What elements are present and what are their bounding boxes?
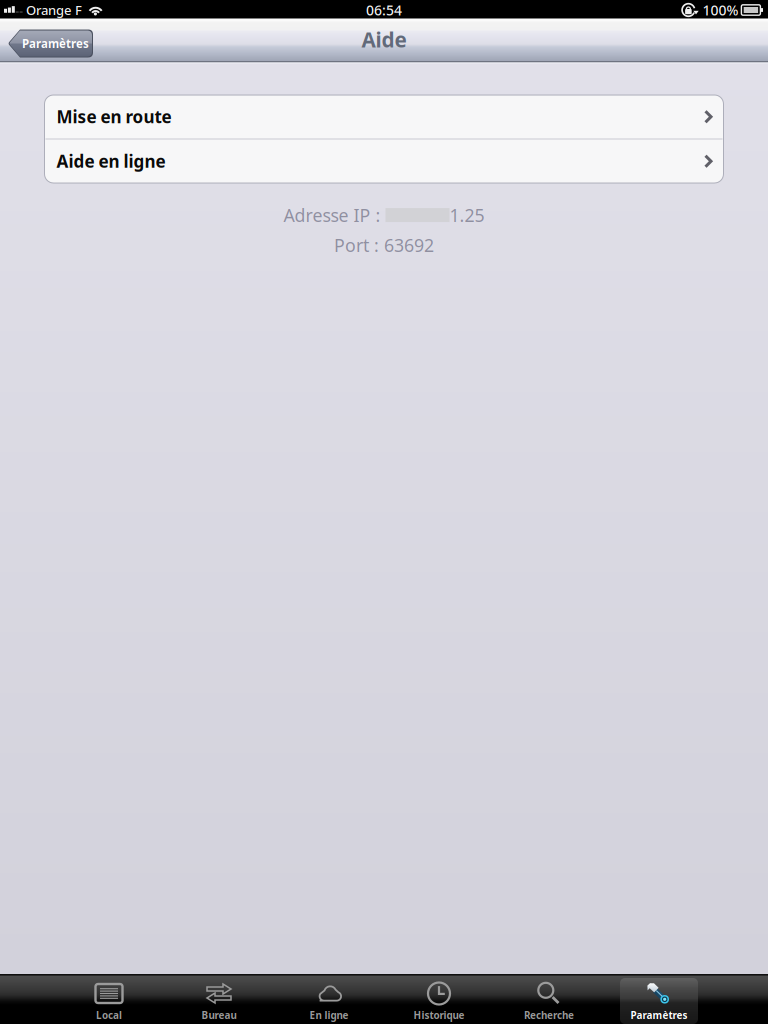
staticText: Recherche [524,1009,574,1022]
staticText: 1.25 [449,203,484,227]
staticText: En ligne [309,1009,348,1022]
staticText: Port : 63692 [334,233,434,257]
button[interactable]: Paramètres [604,974,714,1024]
button[interactable]: Historique [384,974,494,1024]
staticText: Aide en ligne [56,150,165,173]
staticText: Adresse IP : [283,203,385,227]
staticText: 06:54 [366,0,402,20]
staticText: 100% [702,0,738,20]
button[interactable]: Recherche [494,974,604,1024]
staticText: Paramètres [630,1009,687,1022]
staticText: Local [96,1009,122,1022]
staticText: Orange F [26,1,82,19]
button[interactable]: Local [54,974,164,1024]
button[interactable]: Paramètres [8,29,93,57]
staticText: Mise en route [56,105,171,128]
button[interactable]: Aide en ligne [44,139,723,183]
staticText: Paramètres [22,36,89,51]
button[interactable]: En ligne [274,974,384,1024]
staticText: Bureau [201,1009,236,1022]
button[interactable]: Mise en route [44,95,723,138]
button[interactable]: Bureau [164,974,274,1024]
staticText: Aide [361,25,406,53]
staticText: Historique [413,1009,464,1022]
